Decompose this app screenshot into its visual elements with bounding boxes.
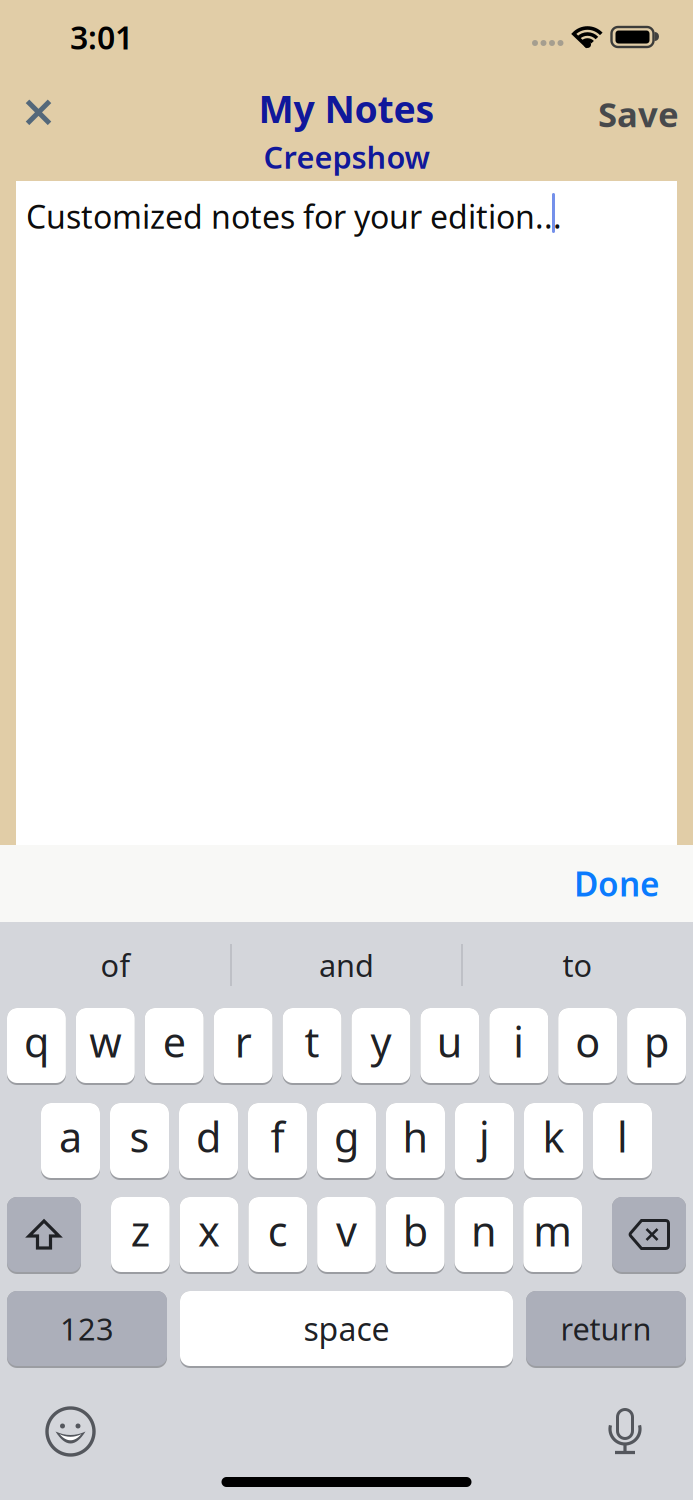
button[interactable]: c (248, 1197, 307, 1274)
button[interactable]: of (0, 945, 231, 985)
staticText: p (644, 1014, 669, 1069)
button[interactable]: p (627, 1008, 686, 1085)
button[interactable]: Save (598, 91, 679, 137)
staticText: u (437, 1014, 463, 1069)
button[interactable]: g (317, 1103, 376, 1180)
staticText: Save (598, 91, 679, 137)
button[interactable]: w (76, 1008, 135, 1085)
button[interactable]: Delete (612, 1197, 686, 1274)
staticText: s (129, 1109, 149, 1164)
button[interactable]: i (489, 1008, 548, 1085)
button[interactable]: y (351, 1008, 410, 1085)
staticText: n (471, 1203, 497, 1258)
staticText: g (334, 1109, 359, 1164)
button[interactable]: n (455, 1197, 513, 1274)
button[interactable]: k (524, 1103, 583, 1180)
staticText: i (513, 1014, 524, 1069)
staticText: t (305, 1014, 320, 1069)
button[interactable]: m (523, 1197, 582, 1274)
button[interactable]: Done (574, 861, 660, 906)
button[interactable]: h (386, 1103, 445, 1180)
button[interactable]: Close (25, 99, 52, 126)
staticText: space (303, 1307, 389, 1350)
staticText: and (319, 945, 374, 985)
staticText: o (575, 1014, 600, 1069)
staticText: w (89, 1014, 121, 1069)
button[interactable]: 123 (7, 1291, 167, 1368)
button[interactable]: e (145, 1008, 204, 1085)
staticText: to (562, 945, 592, 985)
button[interactable]: d (179, 1103, 238, 1180)
staticText: y (370, 1014, 391, 1069)
button[interactable]: v (317, 1197, 376, 1274)
staticText: h (402, 1109, 428, 1164)
staticText: z (131, 1203, 150, 1258)
button[interactable]: r (214, 1008, 273, 1085)
button[interactable]: f (248, 1103, 307, 1180)
staticText: m (533, 1203, 572, 1258)
staticText: Creepshow (263, 136, 429, 177)
staticText: l (617, 1109, 628, 1164)
staticText: 3:01 (70, 16, 133, 58)
staticText: x (198, 1203, 220, 1258)
staticText: return (560, 1308, 651, 1349)
button[interactable]: and (231, 945, 462, 985)
staticText: 123 (60, 1308, 114, 1349)
staticText: e (163, 1014, 186, 1069)
button[interactable]: b (386, 1197, 445, 1274)
staticText: k (542, 1109, 564, 1164)
button[interactable]: l (593, 1103, 652, 1180)
staticText: c (268, 1203, 288, 1258)
button[interactable]: return (526, 1291, 686, 1368)
button[interactable]: Shift (7, 1197, 81, 1274)
staticText: My Notes (258, 84, 434, 133)
button[interactable]: s (110, 1103, 169, 1180)
button[interactable]: o (558, 1008, 617, 1085)
button[interactable]: z (111, 1197, 170, 1274)
button[interactable]: u (420, 1008, 479, 1085)
staticText: d (196, 1109, 221, 1164)
staticText: of (100, 945, 130, 985)
button[interactable]: Dictation (609, 1408, 641, 1454)
staticText: b (403, 1203, 428, 1258)
button[interactable]: Emoji (47, 1408, 94, 1455)
staticText: f (270, 1109, 284, 1164)
staticText: j (479, 1109, 490, 1164)
staticText: Customized notes for your edition... (26, 195, 562, 237)
button[interactable]: q (7, 1008, 66, 1085)
button[interactable]: x (180, 1197, 238, 1274)
button[interactable]: t (283, 1008, 341, 1085)
staticText: v (336, 1203, 357, 1258)
staticText: Done (574, 861, 660, 906)
staticText: q (24, 1014, 49, 1069)
button[interactable]: space (180, 1291, 513, 1368)
button[interactable]: j (455, 1103, 514, 1180)
staticText: a (59, 1109, 82, 1164)
button[interactable]: a (41, 1103, 100, 1180)
staticText: r (235, 1014, 252, 1069)
button[interactable]: to (462, 945, 693, 985)
